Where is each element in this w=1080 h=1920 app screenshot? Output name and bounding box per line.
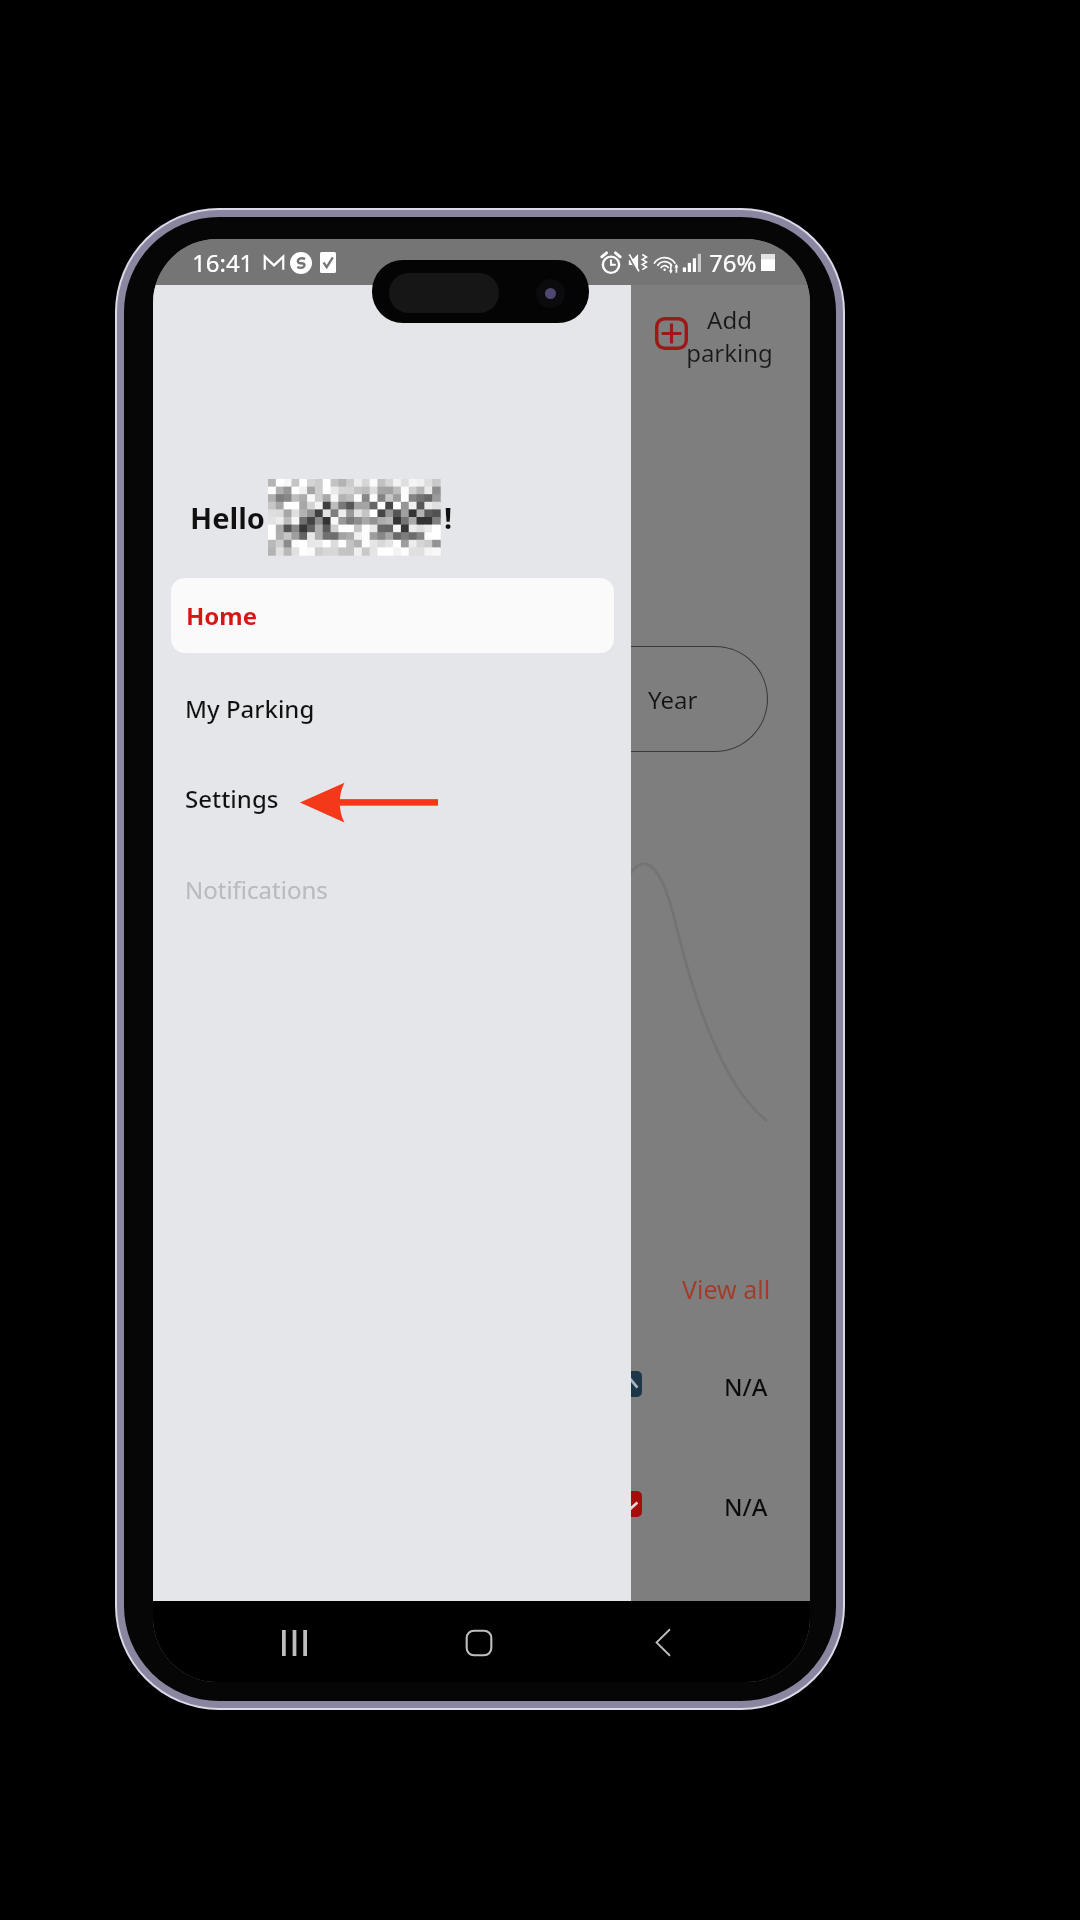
staticText: N/A [724,1370,768,1403]
staticText: Hello [190,498,265,537]
button[interactable]: Notifications [153,854,631,924]
button[interactable]: Settings [153,763,631,833]
staticText: 76% [709,246,757,279]
staticText: Add parking [686,303,773,369]
staticText: My Parking [185,692,315,725]
staticText: Year [648,683,698,716]
button[interactable]: View all [678,1268,775,1310]
button[interactable]: Add parking [649,299,773,371]
staticText: View all [682,1272,771,1306]
button[interactable]: Home [440,1604,517,1681]
button[interactable]: Back [624,1604,701,1681]
staticText: N/A [724,1490,768,1523]
button[interactable]: Home [171,578,614,653]
staticText: 16:41 [192,246,254,279]
staticText: ! [444,498,453,537]
button[interactable]: Year [553,646,768,752]
staticText: Settings [185,782,279,815]
button[interactable]: My Parking [153,673,631,743]
button[interactable]: Recents [256,1604,333,1681]
staticText: Home [186,599,258,632]
staticText: Notifications [185,873,328,906]
